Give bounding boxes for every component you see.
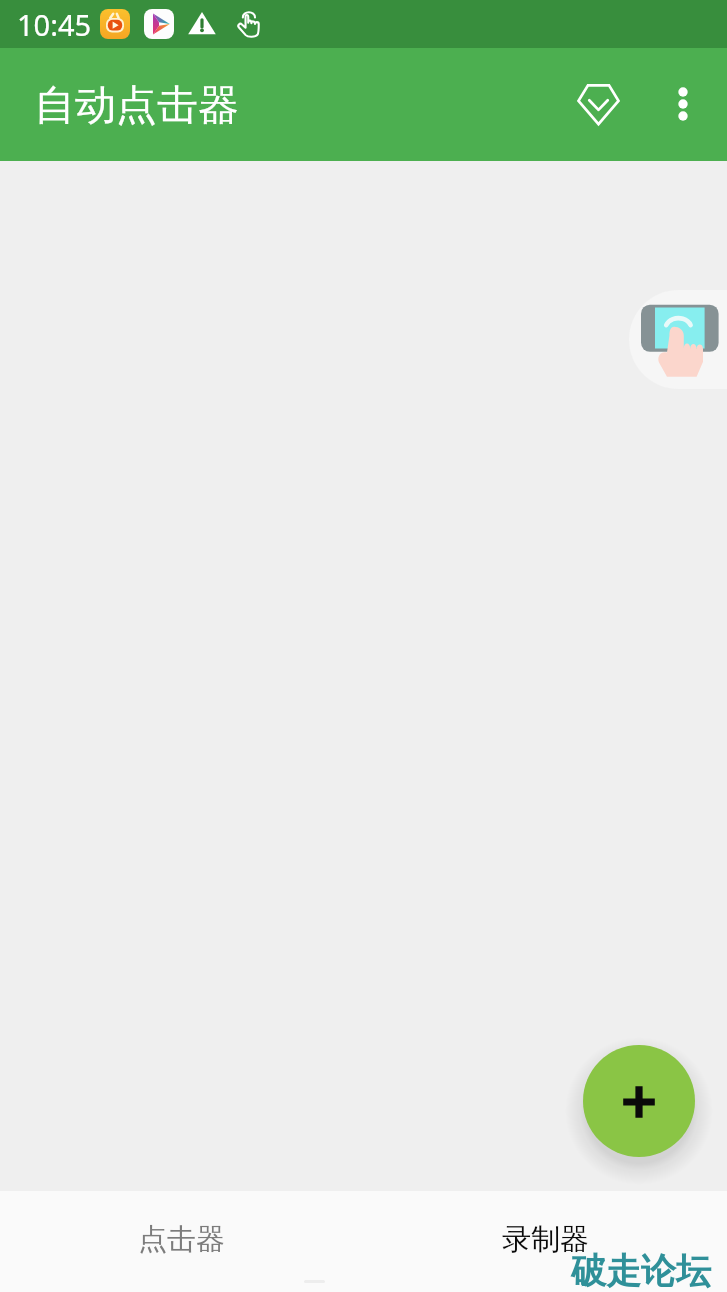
staticText: 自动点击器 — [34, 80, 239, 132]
button[interactable]: Add click — [583, 1045, 695, 1157]
button[interactable]: Floating auto-click widget — [629, 290, 727, 389]
staticText: 点击器 — [138, 1221, 225, 1258]
button[interactable]: Premium — [554, 60, 642, 148]
button[interactable]: More options — [639, 60, 727, 148]
staticText: 10:45 — [17, 5, 92, 44]
button[interactable]: 录制器 — [363, 1191, 727, 1292]
staticText: 录制器 — [502, 1221, 589, 1258]
staticText: 破走论坛 — [571, 1249, 711, 1292]
button[interactable]: 点击器 — [0, 1191, 363, 1292]
